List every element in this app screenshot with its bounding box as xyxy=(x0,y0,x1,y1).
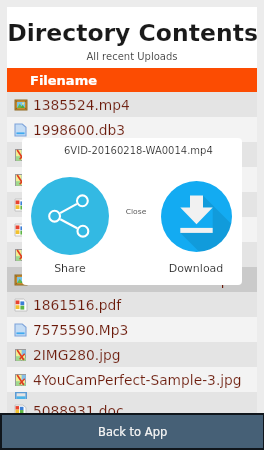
button[interactable]: Share xyxy=(31,177,109,255)
staticText: 6VID-20160218-WA0014.mp4 xyxy=(33,272,239,288)
staticText: 6VID-20160218-WA0014.mp4 xyxy=(64,145,213,157)
staticText: Back to App xyxy=(98,425,168,438)
staticText: 5088931.doc xyxy=(33,403,124,419)
button[interactable]: 7575590.Mp3 xyxy=(7,317,257,342)
staticText: All recent Uploads xyxy=(7,51,257,63)
staticText: 4181211.jpg xyxy=(33,247,121,263)
staticText: 4YouCamPerfect-Sample-3.jpg xyxy=(33,372,242,388)
staticText: 2145138.jpg xyxy=(33,147,121,163)
staticText: Share xyxy=(45,262,95,275)
staticText: 1998600.db3 xyxy=(33,122,126,138)
staticText: 3018121.ppt xyxy=(33,197,122,213)
button[interactable]: 6VID-20160218-WA0014.mp4 xyxy=(7,267,257,292)
button[interactable]: 3018121.ppt xyxy=(7,192,257,217)
button[interactable]: 4YouCamPerfect-Sample-3.jpg xyxy=(7,367,257,392)
button[interactable]: 4181211.jpg xyxy=(7,242,257,267)
button[interactable]: Back to App xyxy=(0,413,264,450)
button[interactable]: 2IMG280.jpg xyxy=(7,342,257,367)
button[interactable]: 5088931.doc xyxy=(7,392,257,417)
button[interactable]: 2381438.jpg xyxy=(7,167,257,192)
staticText: 3918212.pdf xyxy=(33,222,122,238)
button[interactable]: 1861516.pdf xyxy=(7,292,257,317)
staticText: Close xyxy=(118,207,154,216)
staticText: 2381438.jpg xyxy=(33,172,121,188)
staticText: Directory Contents xyxy=(7,19,257,46)
button[interactable]: 2145138.jpg xyxy=(7,142,257,167)
button[interactable]: 3918212.pdf xyxy=(7,217,257,242)
button[interactable]: 1998600.db3 xyxy=(7,117,257,142)
staticText: 1861516.pdf xyxy=(33,297,122,313)
button[interactable]: 1385524.mp4 xyxy=(7,92,257,117)
staticText: 7575590.Mp3 xyxy=(33,322,129,338)
staticText: 1385524.mp4 xyxy=(33,97,130,113)
staticText: Download xyxy=(165,262,227,275)
button[interactable]: Filename xyxy=(7,68,257,92)
button[interactable]: Close xyxy=(118,207,154,219)
staticText: 2IMG280.jpg xyxy=(33,347,121,363)
staticText: Filename xyxy=(30,73,97,88)
button[interactable]: Download xyxy=(161,181,232,252)
